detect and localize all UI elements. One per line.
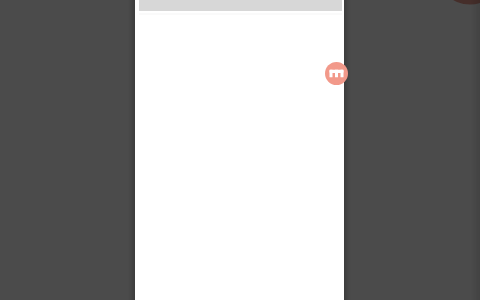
button[interactable]: Logo (325, 62, 348, 85)
